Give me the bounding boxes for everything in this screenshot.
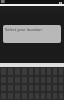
staticText: ▮▮ [59,1,63,4]
staticText: 80 [1,0,5,4]
staticText: Select your location [5,27,42,32]
